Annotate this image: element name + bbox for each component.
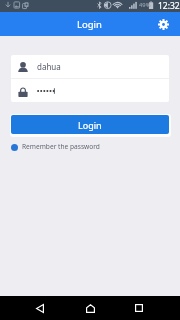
staticText: 49%	[139, 1, 151, 9]
button[interactable]: Recents	[129, 298, 149, 318]
button[interactable]	[11, 79, 169, 102]
button[interactable]: Settings	[153, 14, 173, 34]
staticText: Remember the password	[22, 142, 100, 151]
button[interactable]: Home	[80, 298, 100, 318]
staticText: Login	[78, 119, 102, 131]
button[interactable]: dahua	[11, 55, 169, 78]
staticText: 12:32	[158, 0, 180, 12]
button[interactable]: Login	[11, 115, 169, 134]
staticText: dahua	[37, 61, 61, 72]
button[interactable]: Remember the password	[0, 140, 180, 154]
staticText: Login	[77, 18, 102, 31]
button[interactable]: Back	[30, 298, 50, 318]
